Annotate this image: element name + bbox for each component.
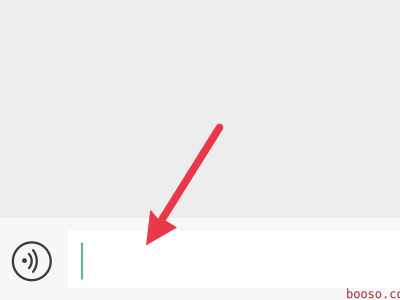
button[interactable]: Message: [68, 230, 400, 287]
button[interactable]: Voice input: [0, 218, 68, 300]
staticText: booso.com: [346, 287, 400, 300]
